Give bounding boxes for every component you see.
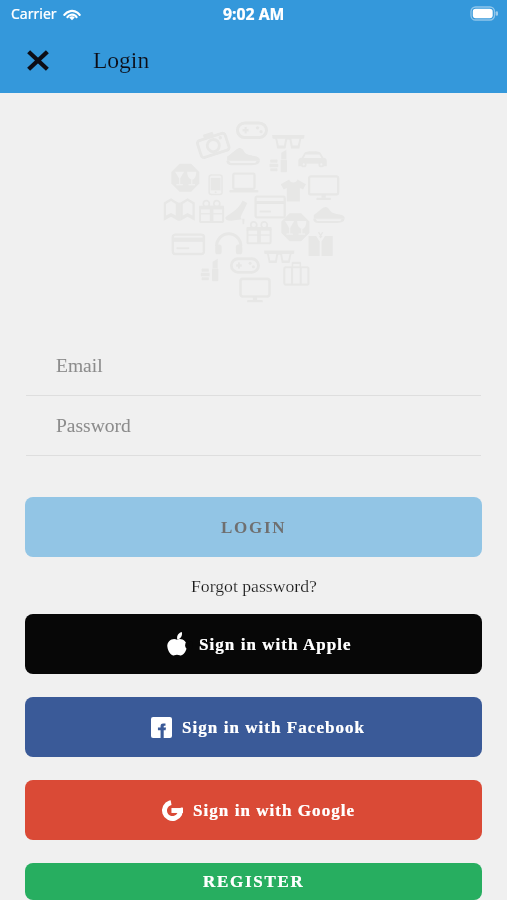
button[interactable]: Password [0,396,507,455]
button[interactable]: LOGIN [25,497,482,557]
staticText: Login [93,47,150,73]
staticText: Sign in with Apple [199,635,352,654]
staticText: Sign in with Facebook [182,718,366,737]
button[interactable]: Email [0,336,507,395]
staticText: Sign in with Google [193,801,356,820]
staticText: Carrier [11,4,57,23]
button[interactable]: Sign in with Google [25,780,482,840]
button[interactable]: REGISTER [25,863,482,900]
button[interactable]: Forgot password? [191,576,317,596]
button[interactable]: Sign in with Apple [25,614,482,674]
button[interactable]: Close [18,42,58,82]
button[interactable]: Sign in with Facebook [25,697,482,757]
staticText: Email [56,355,103,377]
staticText: 9:02 AM [223,3,285,25]
staticText: LOGIN [221,518,287,537]
staticText: Password [56,415,131,437]
staticText: REGISTER [203,872,305,891]
